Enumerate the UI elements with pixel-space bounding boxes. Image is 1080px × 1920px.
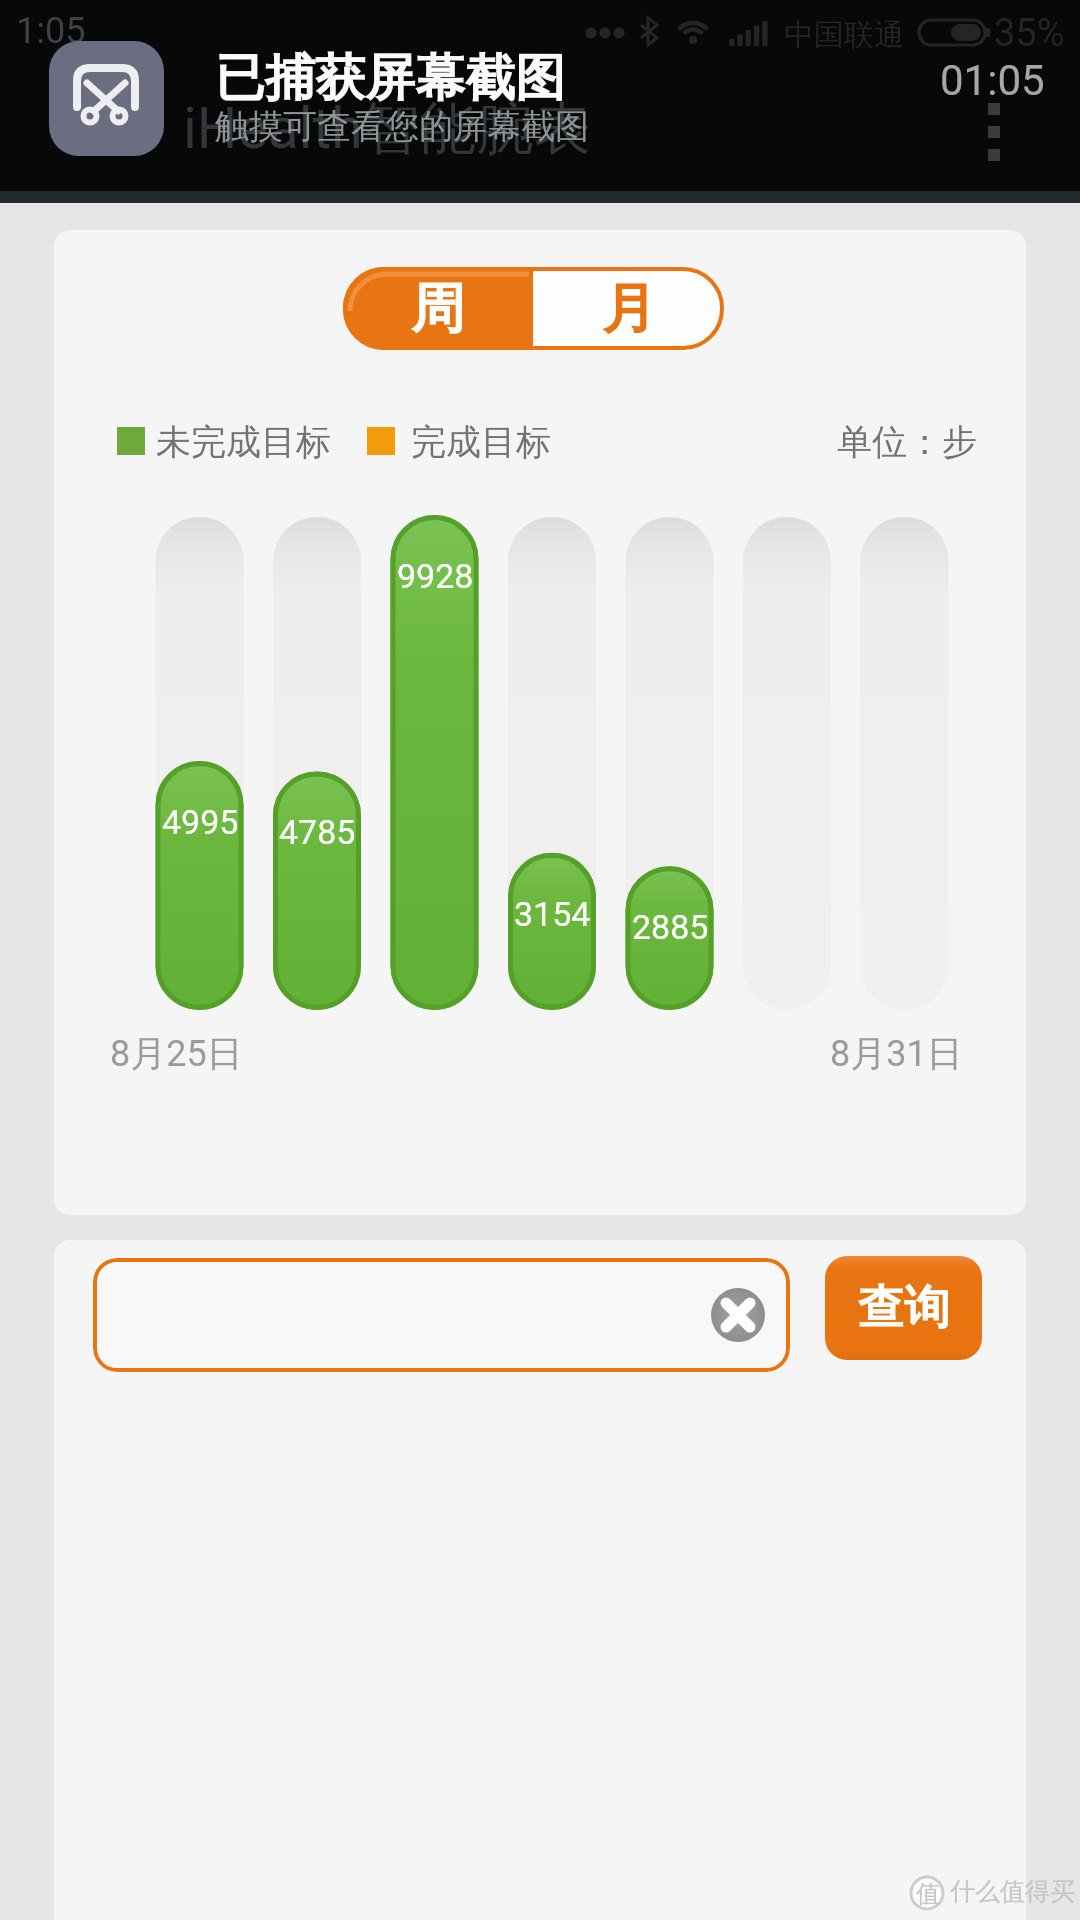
staticText: 值 [916,1879,940,1909]
staticText: 单位：步 [837,420,977,464]
button[interactable]: 月 [533,267,724,350]
staticText: 完成目标 [411,420,551,464]
staticText: 未完成目标 [156,420,331,464]
staticText: iHealth智能腕表 [183,93,591,165]
staticText: 月 [602,275,656,343]
button[interactable] [49,41,164,156]
staticText: 01:05 [940,56,1045,105]
button[interactable] [93,1258,790,1372]
button[interactable]: 1:05 [0,0,1080,203]
staticText: 4785 [279,812,356,852]
staticText: 什么值得买 [950,1876,1075,1907]
staticText: 8月25日 [110,1031,243,1076]
staticText: 4995 [162,802,239,842]
staticText: 1:05 [16,10,86,52]
staticText: 3154 [514,894,591,934]
staticText: 9928 [397,556,474,596]
staticText: 中国联通 [784,16,904,54]
button[interactable]: 周 [343,267,533,350]
staticText: 35% [994,11,1065,56]
button[interactable]: 查询 [825,1256,982,1360]
staticText: 周 [411,275,465,343]
staticText: 查询 [858,1279,950,1337]
staticText: 触摸可查看您的屏幕截图 [215,105,589,148]
staticText: 2885 [632,907,709,947]
staticText: 8月31日 [830,1031,963,1076]
staticText: 已捕获屏幕截图 [215,47,565,110]
